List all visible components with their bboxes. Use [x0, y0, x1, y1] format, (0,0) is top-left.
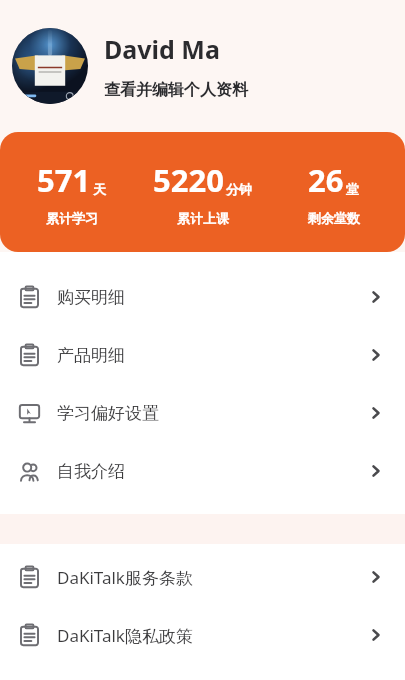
staticText: 天	[93, 181, 106, 197]
staticText: 571	[37, 159, 91, 201]
staticText: 5220	[153, 159, 224, 201]
other: Open	[367, 404, 385, 422]
staticText: 学习偏好设置	[57, 403, 159, 424]
staticText: DaKiTalk服务条款	[57, 566, 193, 589]
staticText: David Ma	[104, 32, 220, 66]
staticText: 累计学习	[46, 210, 98, 226]
button[interactable]: 学习偏好设置	[0, 384, 405, 442]
button[interactable]: Profile photo	[0, 0, 405, 132]
button[interactable]: DaKiTalk隐私政策	[0, 606, 405, 664]
other: Open	[367, 462, 385, 480]
staticText: 26	[308, 159, 344, 201]
other: Open	[367, 568, 385, 586]
staticText: 自我介绍	[57, 461, 125, 482]
other: Open	[367, 288, 385, 306]
button[interactable]: 购买明细	[0, 268, 405, 326]
staticText: 堂	[346, 181, 359, 197]
staticText: 查看并编辑个人资料	[104, 80, 248, 100]
staticText: 剩余堂数	[308, 210, 360, 226]
other: Profile photo	[12, 28, 88, 104]
staticText: 产品明细	[57, 345, 125, 366]
other: Open	[367, 346, 385, 364]
other: Open	[367, 626, 385, 644]
button[interactable]: DaKiTalk服务条款	[0, 548, 405, 606]
staticText: 累计上课	[177, 210, 229, 226]
staticText: 购买明细	[57, 287, 125, 308]
button[interactable]: 自我介绍	[0, 442, 405, 500]
button[interactable]: 产品明细	[0, 326, 405, 384]
staticText: DaKiTalk隐私政策	[57, 624, 193, 647]
staticText: 分钟	[226, 181, 252, 197]
